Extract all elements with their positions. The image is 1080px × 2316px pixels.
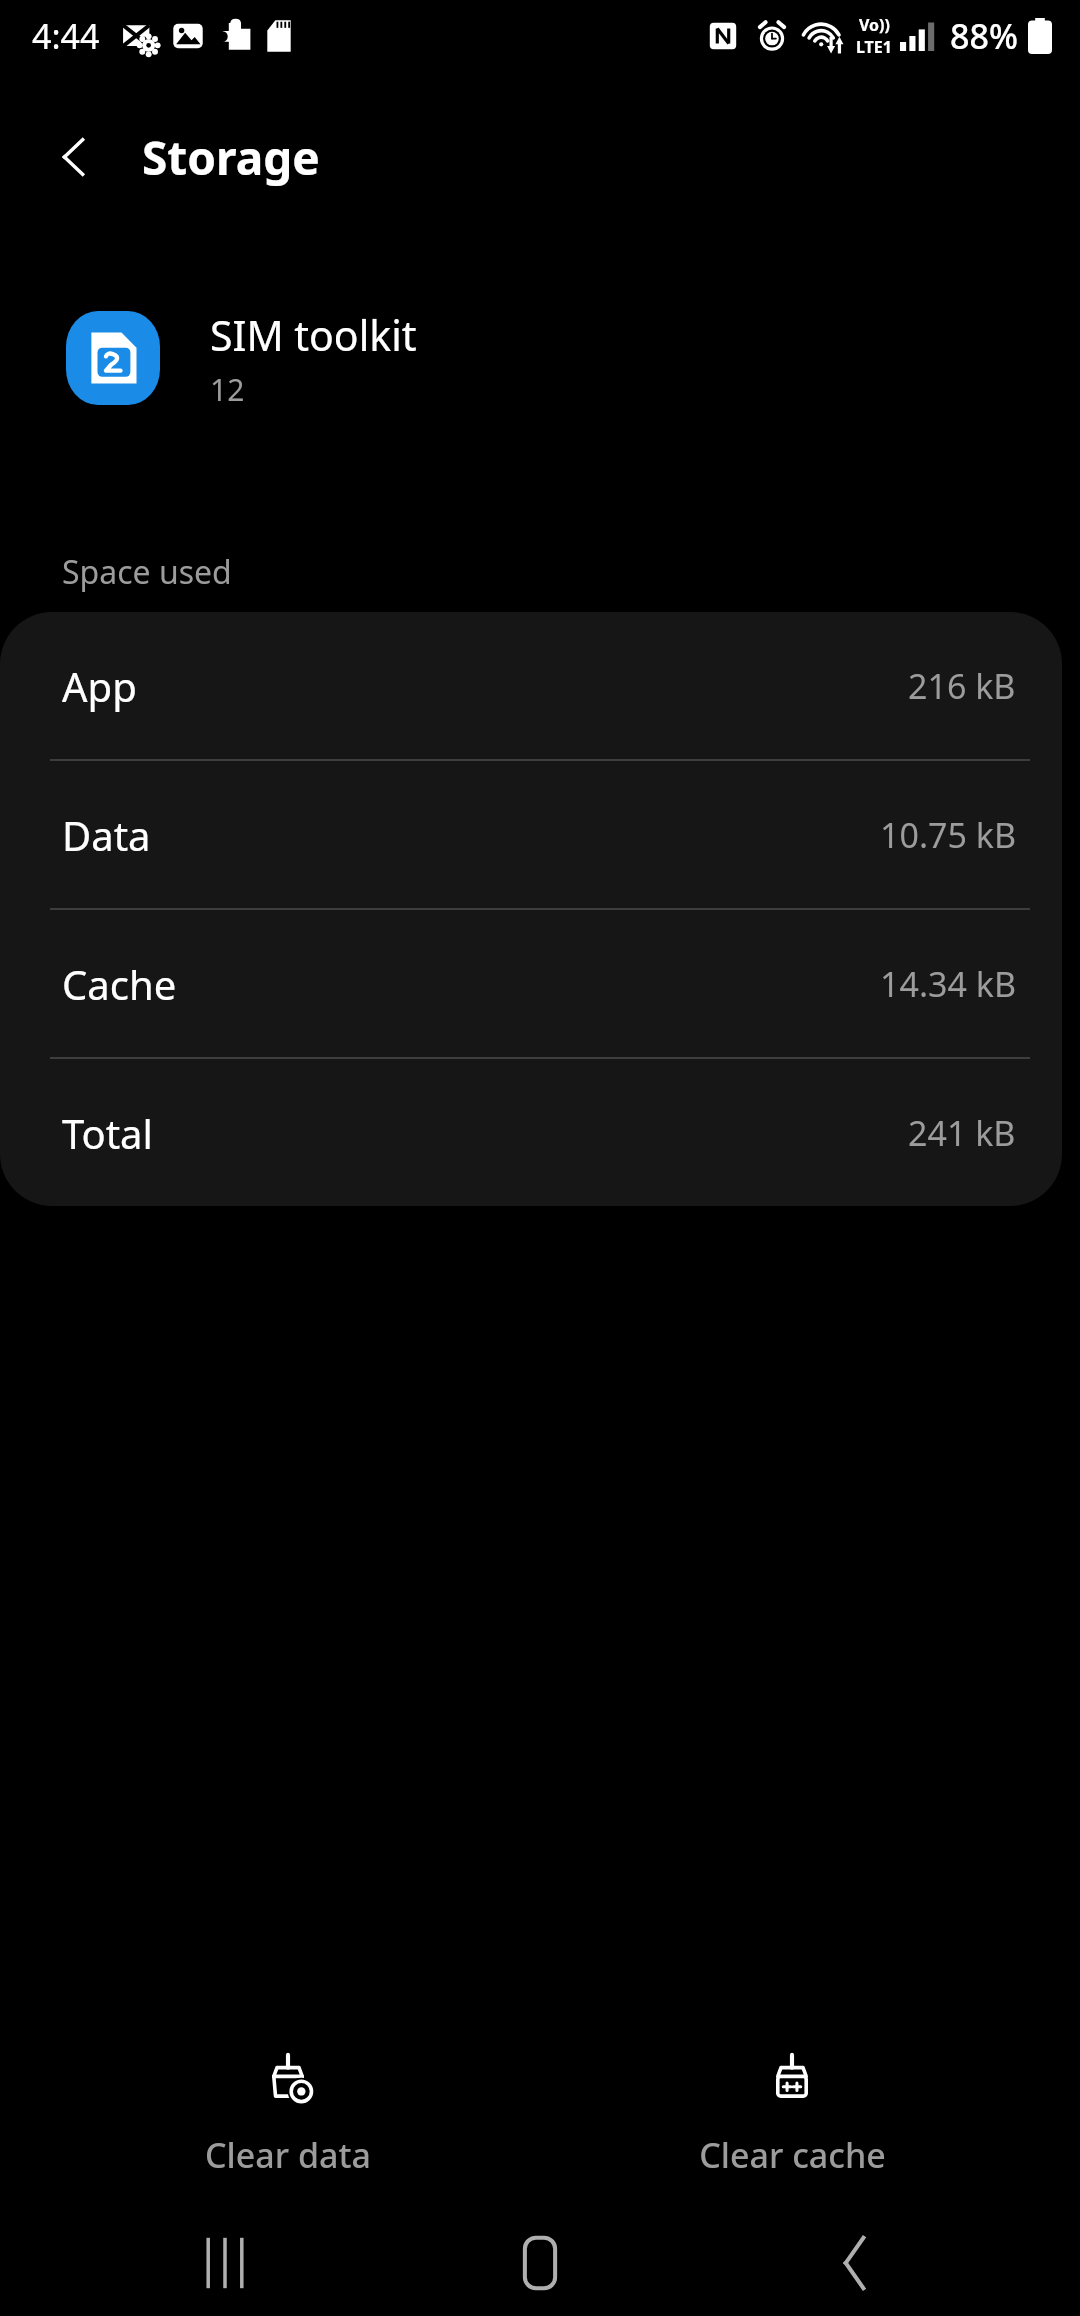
staticText: Space used (62, 550, 232, 594)
staticText: 4:44 (32, 13, 100, 59)
staticText: Clear data (205, 2132, 371, 2178)
staticText: Data (62, 808, 151, 862)
staticText: Vo)) (859, 14, 890, 36)
staticText: 12 (210, 369, 245, 410)
button[interactable]: Navigate up (36, 119, 112, 195)
staticText: Storage (142, 126, 320, 189)
staticText: 14.34 kB (880, 961, 1016, 1007)
staticText: Total (62, 1106, 153, 1160)
staticText: 241 kB (908, 1110, 1016, 1156)
button[interactable]: Cache (0, 910, 1062, 1057)
button[interactable]: App (0, 612, 1062, 759)
staticText: App (62, 659, 137, 713)
staticText: LTE1 (856, 36, 892, 58)
staticText: 88% (950, 13, 1018, 59)
button[interactable]: Data (0, 761, 1062, 908)
staticText: SIM toolkit (210, 307, 417, 363)
button[interactable]: Total (0, 1059, 1062, 1206)
button[interactable]: Clear cache (577, 2040, 1007, 2190)
staticText: Cache (62, 957, 177, 1011)
button[interactable]: Back (765, 2210, 945, 2316)
button[interactable]: Recent apps (135, 2210, 315, 2316)
staticText: 10.75 kB (880, 812, 1016, 858)
staticText: 216 kB (908, 663, 1016, 709)
button[interactable]: Clear data (73, 2040, 503, 2190)
staticText: Clear cache (699, 2132, 886, 2178)
button[interactable]: Home (450, 2210, 630, 2316)
button[interactable]: SIM toolkit (0, 292, 1080, 424)
